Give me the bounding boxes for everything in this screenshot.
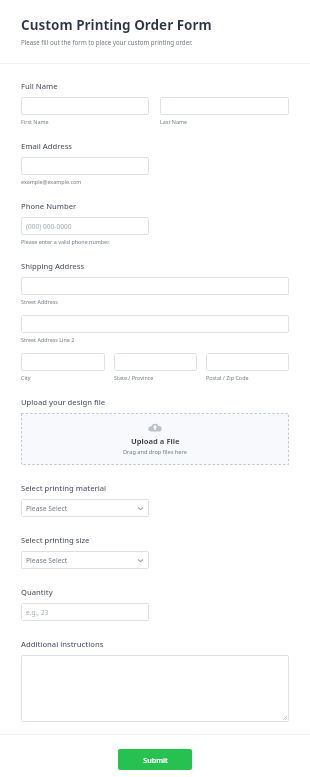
staticText: Upload a File xyxy=(131,436,180,446)
staticText: e.g., 23 xyxy=(26,608,49,617)
staticText: Street Address xyxy=(21,298,58,305)
staticText: Submit xyxy=(143,755,168,765)
button[interactable]: e.g., 23 xyxy=(21,603,149,621)
staticText: Postal / Zip Code xyxy=(206,374,249,381)
button[interactable] xyxy=(21,655,289,722)
button[interactable] xyxy=(206,353,289,371)
staticText: Upload your design file xyxy=(21,397,106,407)
button[interactable] xyxy=(21,97,149,115)
button[interactable] xyxy=(21,277,289,295)
button[interactable]: Please Select xyxy=(21,499,149,517)
staticText: Select printing material xyxy=(21,483,107,493)
button[interactable] xyxy=(114,353,197,371)
staticText: Drag and drop files here xyxy=(123,448,187,456)
staticText: City xyxy=(21,374,31,381)
staticText: Phone Number xyxy=(21,201,77,211)
staticText: Quantity xyxy=(21,587,53,597)
button[interactable] xyxy=(160,97,289,115)
staticText: First Name xyxy=(21,118,49,125)
staticText: Please Select xyxy=(26,556,68,565)
staticText: Additional instructions xyxy=(21,639,104,649)
button[interactable]: (000) 000-0000 xyxy=(21,217,149,235)
staticText: State / Province xyxy=(114,374,154,381)
staticText: Shipping Address xyxy=(21,261,85,271)
staticText: Please enter a valid phone number. xyxy=(21,238,110,245)
button[interactable] xyxy=(21,157,149,175)
staticText: Full Name xyxy=(21,81,58,91)
staticText: (000) 000-0000 xyxy=(26,222,72,231)
button[interactable]: Submit xyxy=(118,749,192,770)
staticText: Please fill out the form to place your c… xyxy=(21,38,193,46)
staticText: Please Select xyxy=(26,504,68,513)
staticText: example@example.com xyxy=(21,178,82,185)
staticText: Email Address xyxy=(21,141,73,151)
staticText: Last Name xyxy=(160,118,187,125)
button[interactable] xyxy=(21,353,105,371)
staticText: Select printing size xyxy=(21,535,90,545)
button[interactable]: Please Select xyxy=(21,551,149,569)
button[interactable]: Upload a File xyxy=(21,413,289,465)
button[interactable] xyxy=(21,315,289,333)
staticText: Street Address Line 2 xyxy=(21,336,75,343)
staticText: Custom Printing Order Form xyxy=(21,16,212,34)
